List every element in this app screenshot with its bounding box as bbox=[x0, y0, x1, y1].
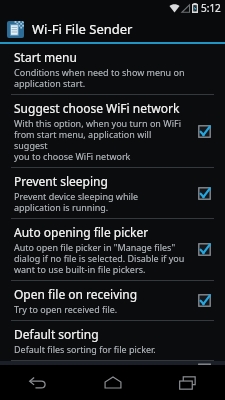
staticText: Conditions when need to show menu on app… bbox=[14, 66, 185, 89]
staticText: Auto open file picker in "Manage files" … bbox=[14, 241, 185, 275]
button[interactable]: Prevent sleeping bbox=[0, 168, 225, 218]
staticText: 5:12 bbox=[201, 1, 221, 15]
button[interactable]: Home bbox=[75, 365, 150, 400]
staticText: Prevent device sleeping while applicatio… bbox=[14, 190, 139, 213]
button[interactable]: Recent apps bbox=[150, 365, 225, 400]
staticText: Start menu bbox=[14, 49, 77, 65]
staticText: With this option, when you turn on WiFi … bbox=[14, 117, 185, 162]
button[interactable]: Auto opening file picker bbox=[0, 219, 225, 280]
staticText: Try to open received file. bbox=[14, 303, 118, 315]
staticText: Open file on receiving bbox=[14, 286, 138, 302]
button[interactable]: Open file on receiving bbox=[0, 281, 225, 320]
staticText: Default sorting bbox=[14, 326, 99, 342]
button[interactable]: Toggle setting bbox=[197, 242, 212, 257]
button[interactable]: Toggle setting bbox=[197, 186, 212, 201]
staticText: Default files sorting for file picker. bbox=[14, 343, 156, 355]
button[interactable]: Start menu bbox=[0, 44, 225, 94]
button[interactable]: Default sorting bbox=[0, 321, 225, 360]
button[interactable]: Suggest choose WiFi network bbox=[0, 95, 225, 167]
staticText: Suggest choose WiFi network bbox=[14, 100, 180, 116]
staticText: Prevent sleeping bbox=[14, 173, 108, 189]
button[interactable]: Toggle setting bbox=[197, 124, 212, 139]
staticText: Auto opening file picker bbox=[14, 224, 149, 240]
button[interactable]: Toggle setting bbox=[197, 293, 212, 308]
button[interactable]: Back bbox=[0, 365, 75, 400]
staticText: Wi-Fi File Sender bbox=[32, 20, 133, 38]
button[interactable]: Confirm exit bbox=[0, 361, 225, 365]
